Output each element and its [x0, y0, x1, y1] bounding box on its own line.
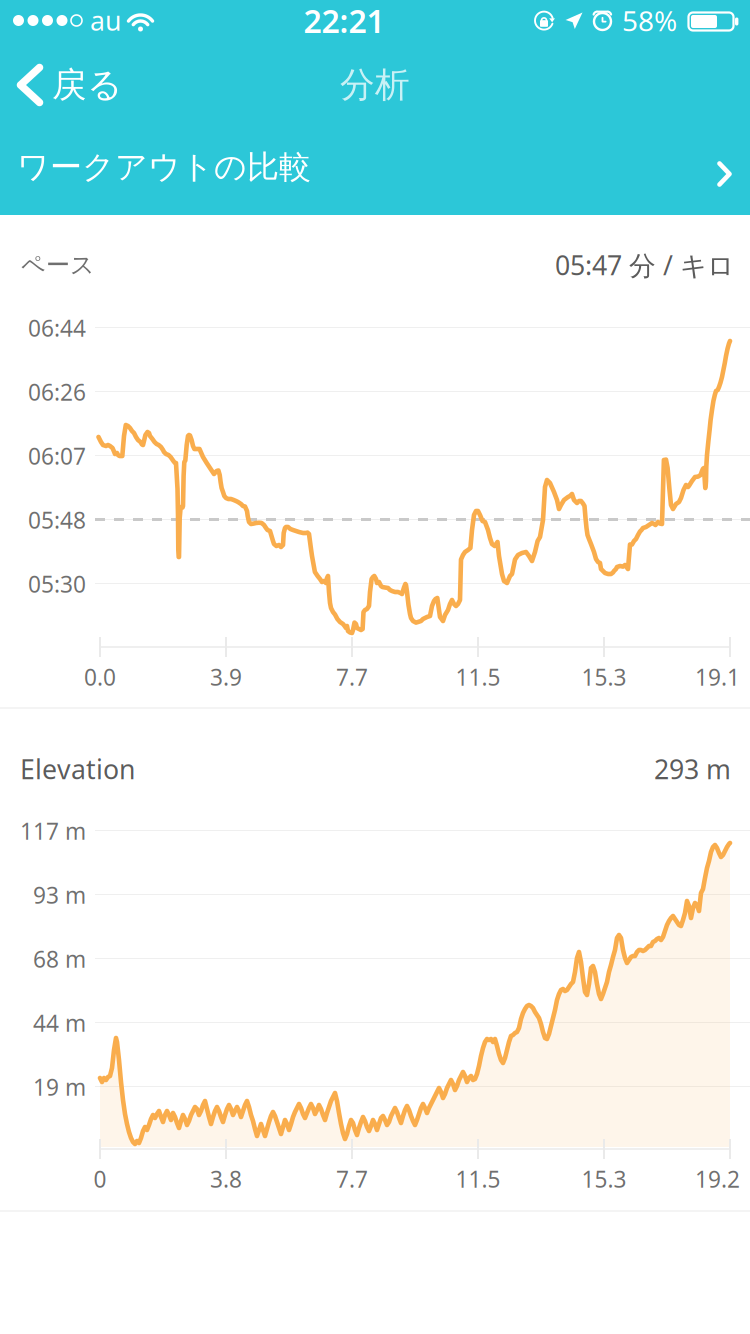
staticText: 19 m [33, 1072, 86, 1102]
staticText: 11.5 [455, 662, 500, 692]
staticText: 68 m [33, 944, 86, 974]
staticText: 05:47 分 / キロ [555, 247, 734, 283]
staticText: 293 m [654, 751, 731, 787]
staticText: Elevation [20, 751, 135, 787]
staticText: 06:07 [28, 441, 86, 471]
staticText: 05:30 [28, 569, 86, 599]
staticText: 05:48 [28, 505, 86, 535]
button[interactable]: 戻る [1, 60, 136, 110]
staticText: 7.7 [336, 662, 368, 692]
staticText: ペース [21, 250, 95, 280]
staticText: au [90, 3, 121, 38]
staticText: 7.7 [336, 1164, 368, 1194]
staticText: 22:21 [303, 0, 384, 42]
button[interactable]: ワークアウトの比較 [0, 115, 750, 215]
staticText: 19.1 [695, 662, 740, 692]
staticText: 3.9 [210, 662, 242, 692]
staticText: 06:26 [28, 377, 86, 407]
staticText: 15.3 [581, 662, 626, 692]
staticText: 15.3 [581, 1164, 626, 1194]
staticText: 0.0 [84, 662, 116, 692]
staticText: 戻る [52, 64, 122, 106]
staticText: ワークアウトの比較 [17, 147, 311, 187]
staticText: 分析 [340, 64, 410, 106]
staticText: 3.8 [210, 1164, 242, 1194]
staticText: 44 m [33, 1008, 86, 1038]
staticText: 11.5 [455, 1164, 500, 1194]
staticText: 117 m [20, 816, 86, 846]
staticText: 58% [622, 2, 677, 39]
staticText: 0 [93, 1164, 106, 1194]
staticText: 19.2 [695, 1164, 740, 1194]
staticText: 06:44 [28, 313, 86, 343]
staticText: 93 m [33, 880, 86, 910]
